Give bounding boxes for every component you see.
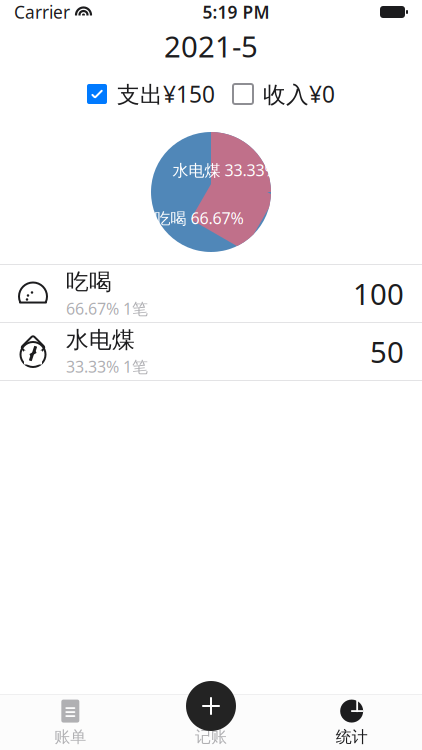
button[interactable]: 吃喝	[0, 265, 422, 322]
button[interactable]: 支出¥150	[87, 79, 215, 109]
button[interactable]: 收入¥0	[233, 79, 335, 109]
staticText: 收入¥0	[263, 79, 335, 109]
staticText: 水电煤 33.33%	[172, 159, 277, 181]
button[interactable]: 记账	[186, 681, 236, 731]
button[interactable]: 水电煤	[0, 323, 422, 380]
staticText: 吃喝 66.67%	[154, 207, 243, 229]
button[interactable]: 记账	[141, 695, 281, 750]
staticText: 记账	[195, 727, 227, 747]
staticText: 吃喝	[66, 268, 112, 296]
staticText: 水电煤	[66, 326, 135, 354]
staticText: 100	[353, 274, 404, 313]
staticText: 支出¥150	[117, 79, 215, 109]
staticText: Carrier	[14, 0, 70, 23]
staticText: 66.67% 1笔	[66, 298, 148, 319]
staticText: 2021-5	[164, 26, 258, 65]
button[interactable]: 统计	[281, 695, 422, 750]
staticText: 50	[370, 332, 404, 371]
staticText: 统计	[336, 727, 368, 747]
button[interactable]: 账单	[0, 695, 141, 750]
staticText: 账单	[54, 727, 86, 747]
staticText: 5:19 PM	[202, 0, 269, 23]
staticText: 33.33% 1笔	[66, 356, 148, 377]
